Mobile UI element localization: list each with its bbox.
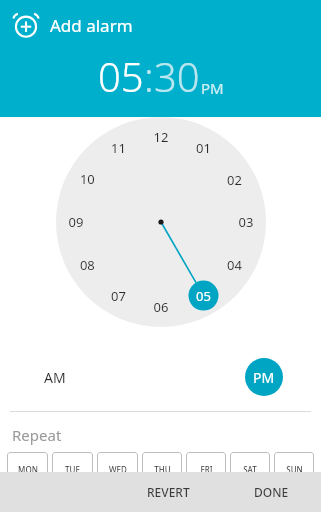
staticText: FRI <box>200 464 213 475</box>
staticText: DONE <box>254 484 289 500</box>
button[interactable]: Hour picker <box>0 117 321 397</box>
staticText: MON <box>18 464 38 475</box>
button[interactable]: FRI <box>186 452 226 486</box>
button[interactable]: DONE <box>240 476 303 508</box>
staticText: 05 <box>98 49 144 103</box>
other: Add alarm <box>12 11 40 39</box>
staticText: AM <box>44 368 66 387</box>
staticText: WED <box>109 464 127 475</box>
staticText: 30 <box>154 49 200 103</box>
staticText: SAT <box>243 464 257 475</box>
staticText: PM <box>253 368 275 387</box>
staticText: TUE <box>65 464 80 475</box>
button[interactable]: SAT <box>230 452 270 486</box>
button[interactable]: 05 <box>98 49 144 103</box>
button[interactable]: Add alarm <box>10 9 135 41</box>
button[interactable]: SUN <box>274 452 314 486</box>
button[interactable]: MON <box>7 452 48 486</box>
staticText: THU <box>154 464 171 475</box>
staticText: REVERT <box>147 484 190 500</box>
staticText: PM <box>201 78 224 98</box>
button[interactable]: TUE <box>52 452 93 486</box>
button[interactable]: AM <box>34 356 76 398</box>
button[interactable]: 30 <box>154 49 200 103</box>
button[interactable]: THU <box>142 452 182 486</box>
staticText: SUN <box>286 464 303 475</box>
button[interactable]: PM <box>245 358 283 396</box>
staticText: : <box>144 49 154 103</box>
staticText: Add alarm <box>50 14 133 37</box>
button[interactable]: REVERT <box>133 476 204 508</box>
staticText: Repeat <box>12 425 62 445</box>
button[interactable]: WED <box>97 452 138 486</box>
